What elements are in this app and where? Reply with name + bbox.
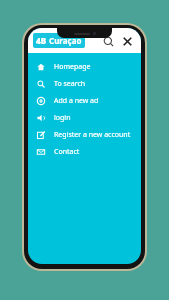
button[interactable]: Close menu — [119, 33, 135, 49]
staticText: To search — [54, 79, 86, 89]
button[interactable]: Contact — [28, 143, 141, 160]
button[interactable]: Register a new account — [28, 126, 141, 143]
staticText: Contact — [54, 147, 80, 157]
staticText: 4B — [36, 35, 47, 46]
staticText: Homepage — [54, 62, 91, 72]
button[interactable]: login — [28, 109, 141, 126]
button[interactable]: Homepage — [28, 58, 141, 75]
button[interactable]: To search — [28, 75, 141, 92]
staticText: Register a new account — [54, 130, 131, 140]
staticText: login — [54, 113, 71, 123]
button[interactable]: 4B — [33, 33, 85, 48]
staticText: Curaçao — [49, 35, 82, 46]
button[interactable]: Add a new ad — [28, 92, 141, 109]
button[interactable]: Search — [100, 33, 116, 49]
staticText: Add a new ad — [54, 96, 99, 106]
